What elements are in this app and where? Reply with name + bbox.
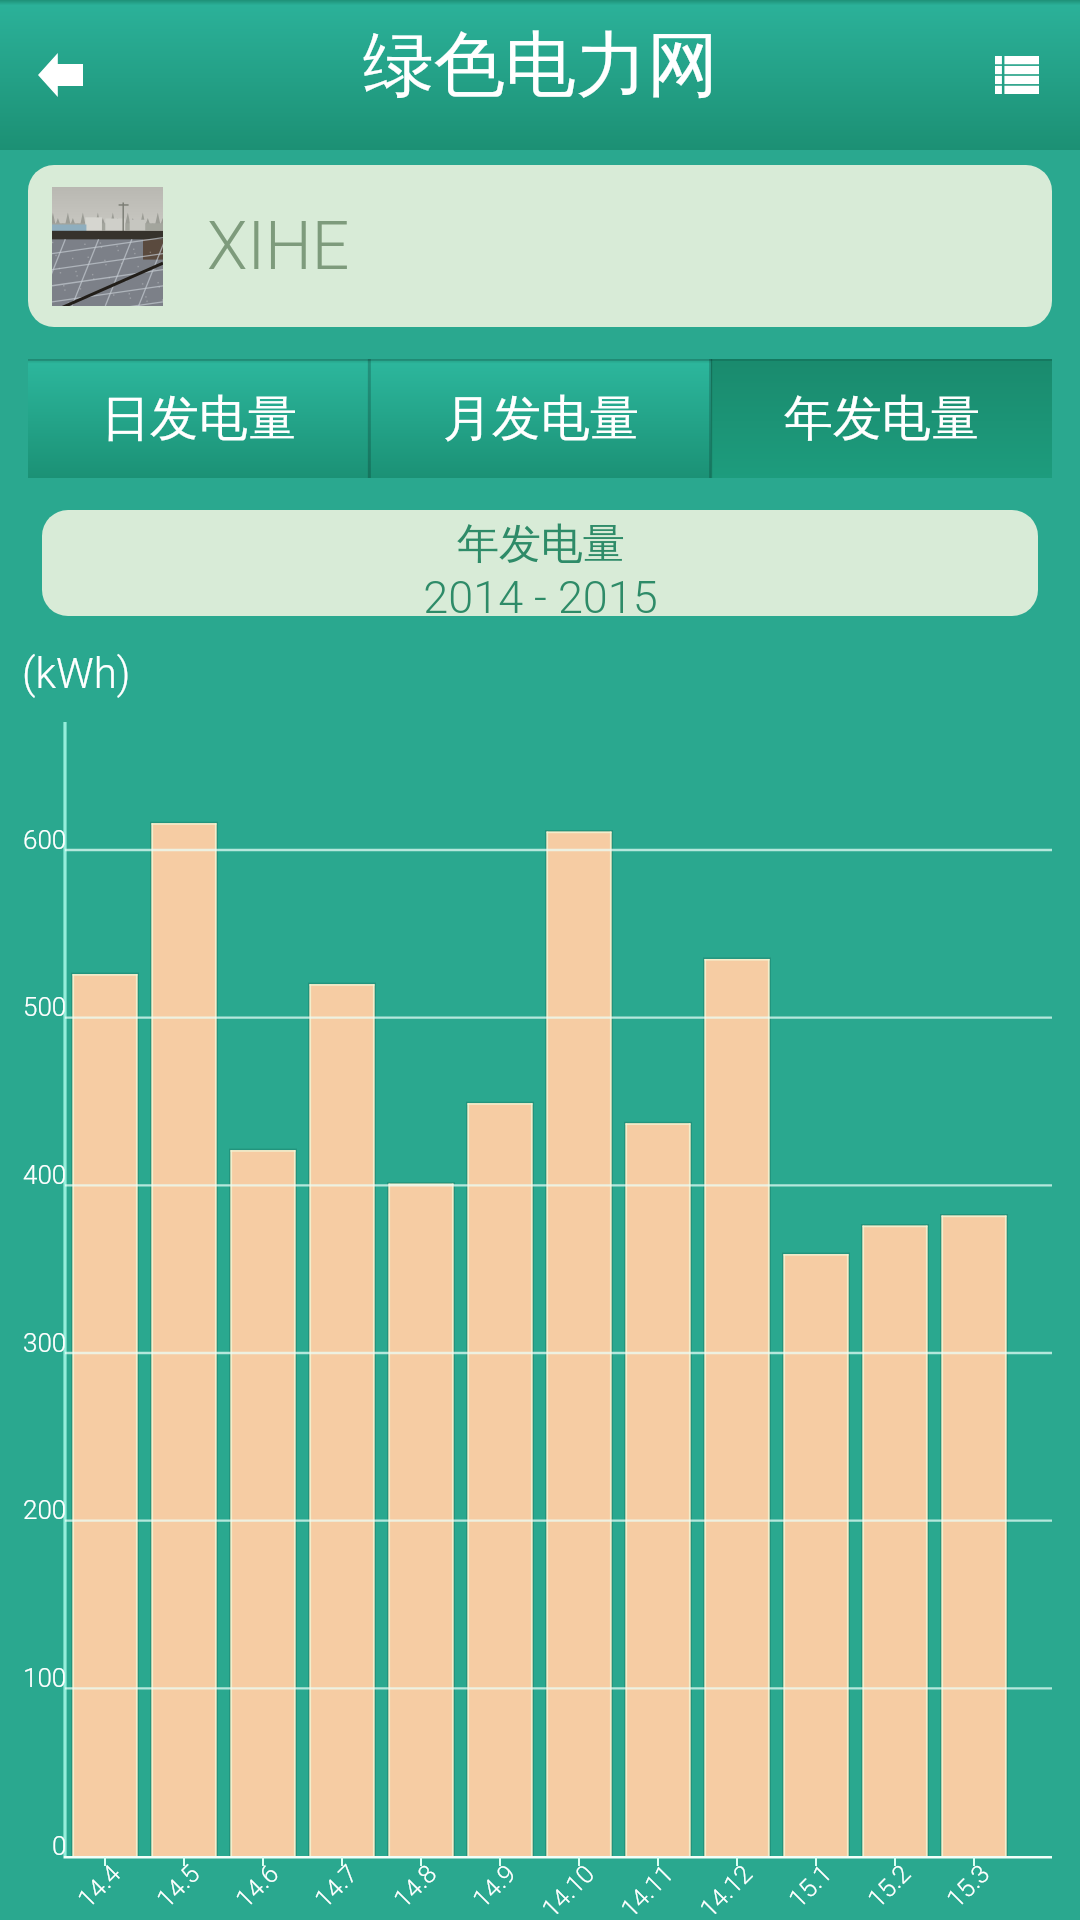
staticText: XIHE <box>207 208 350 285</box>
button[interactable]: Menu <box>962 15 1072 135</box>
button[interactable]: 日发电量 <box>28 359 370 478</box>
staticText: 年发电量 <box>784 388 980 450</box>
button[interactable]: 年发电量 <box>711 359 1052 478</box>
button[interactable]: XIHE <box>28 165 1052 327</box>
staticText: 2014 - 2015 <box>423 571 658 616</box>
staticText: 绿色电力网 <box>363 21 718 110</box>
button[interactable]: 月发电量 <box>370 359 711 478</box>
staticText: 年发电量 <box>457 518 625 571</box>
button[interactable]: Back <box>8 15 112 135</box>
staticText: 月发电量 <box>443 388 639 450</box>
staticText: 日发电量 <box>101 388 297 450</box>
